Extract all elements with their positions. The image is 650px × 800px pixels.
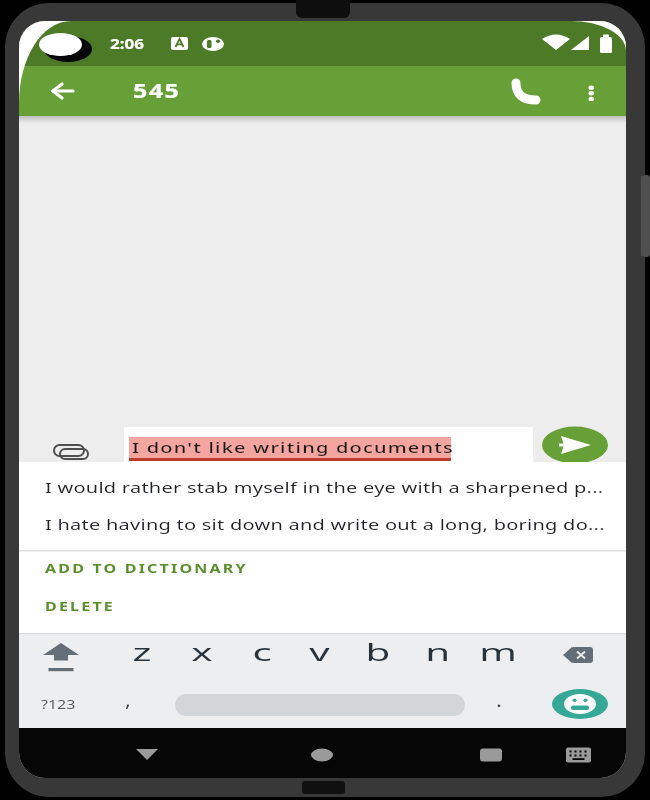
button[interactable] <box>559 739 599 769</box>
staticText: ?123 <box>41 695 76 713</box>
staticText: b <box>366 635 390 668</box>
button[interactable]: z <box>122 631 162 671</box>
staticText: DELETE <box>45 597 115 615</box>
button[interactable] <box>470 739 510 769</box>
staticText: 2:06 <box>110 34 144 53</box>
staticText: . <box>496 688 502 712</box>
staticText: x <box>191 635 213 668</box>
button[interactable]: c <box>242 631 282 671</box>
button[interactable]: . <box>496 680 502 720</box>
button[interactable]: n <box>418 631 458 671</box>
staticText: n <box>425 635 452 668</box>
button[interactable]: b <box>358 631 398 671</box>
button[interactable] <box>554 635 604 675</box>
button[interactable] <box>549 686 611 722</box>
staticText: m <box>479 635 518 668</box>
button[interactable]: I would rather stab myself in the eye wi… <box>45 467 604 507</box>
button[interactable]: ADD TO DICTIONARY <box>45 548 248 588</box>
staticText: 545 <box>133 76 181 104</box>
staticText: ADD TO DICTIONARY <box>45 559 248 577</box>
staticText: v <box>309 635 331 668</box>
staticText: I hate having to sit down and write out … <box>45 515 605 534</box>
button[interactable] <box>33 635 98 675</box>
button[interactable]: x <box>182 631 222 671</box>
button[interactable]: m <box>478 631 518 671</box>
button[interactable] <box>542 427 608 465</box>
button[interactable] <box>49 436 89 460</box>
button[interactable]: DELETE <box>45 586 115 626</box>
button[interactable]: , <box>125 680 131 720</box>
button[interactable]: ?123 <box>41 684 76 724</box>
button[interactable] <box>175 689 465 719</box>
staticText: c <box>252 635 273 668</box>
staticText: I would rather stab myself in the eye wi… <box>45 478 604 497</box>
staticText: z <box>132 635 152 668</box>
staticText: I don't like writing documents <box>132 437 455 458</box>
button[interactable]: I hate having to sit down and write out … <box>45 504 605 544</box>
button[interactable] <box>43 76 83 106</box>
staticText: , <box>125 688 131 712</box>
button[interactable]: v <box>300 631 340 671</box>
button[interactable] <box>124 427 533 462</box>
button[interactable] <box>576 76 606 106</box>
button[interactable] <box>506 76 546 106</box>
button[interactable] <box>127 739 167 769</box>
button[interactable] <box>302 739 342 769</box>
